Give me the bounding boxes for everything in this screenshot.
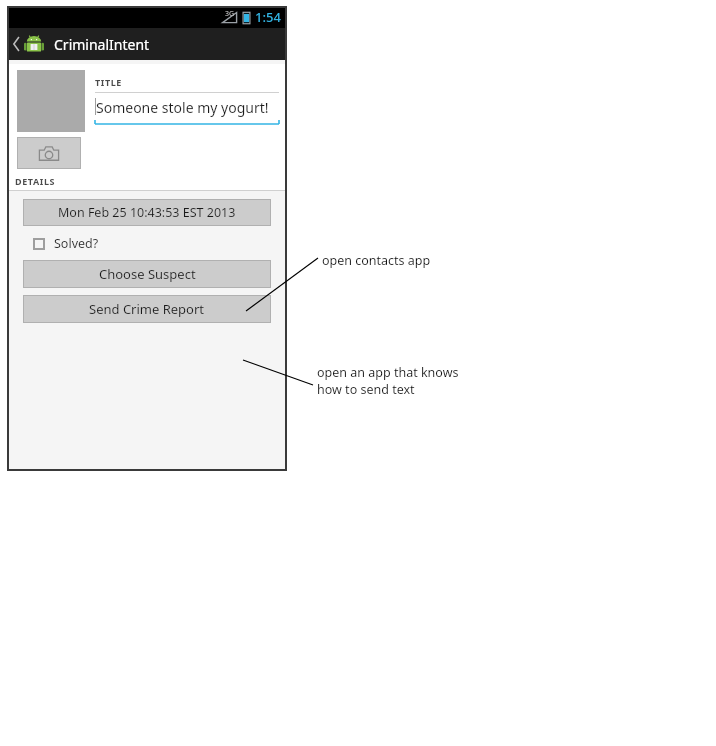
button[interactable]: Take photo (17, 137, 81, 169)
button[interactable]: Solved? (31, 232, 101, 255)
button[interactable]: Choose Suspect (23, 260, 271, 288)
staticText: Someone stole my yogurt! (96, 98, 269, 117)
staticText: DETAILS (15, 175, 56, 187)
staticText: 1:54 (255, 8, 281, 26)
button[interactable]: Someone stole my yogurt! (95, 98, 279, 117)
button[interactable]: Mon Feb 25 10:43:53 EST 2013 (23, 199, 271, 226)
staticText: open contacts app (322, 252, 431, 269)
staticText: 3G (225, 9, 235, 19)
staticText: Mon Feb 25 10:43:53 EST 2013 (58, 204, 236, 221)
button[interactable]: Navigate up (7, 30, 48, 58)
staticText: TITLE (95, 76, 122, 88)
staticText: open an app that knows how to send text (317, 364, 459, 397)
staticText: CriminalIntent (54, 35, 150, 54)
staticText: Choose Suspect (99, 265, 196, 283)
staticText: Solved? (54, 235, 99, 252)
button[interactable]: Send Crime Report (23, 295, 271, 323)
staticText: Send Crime Report (89, 300, 205, 318)
